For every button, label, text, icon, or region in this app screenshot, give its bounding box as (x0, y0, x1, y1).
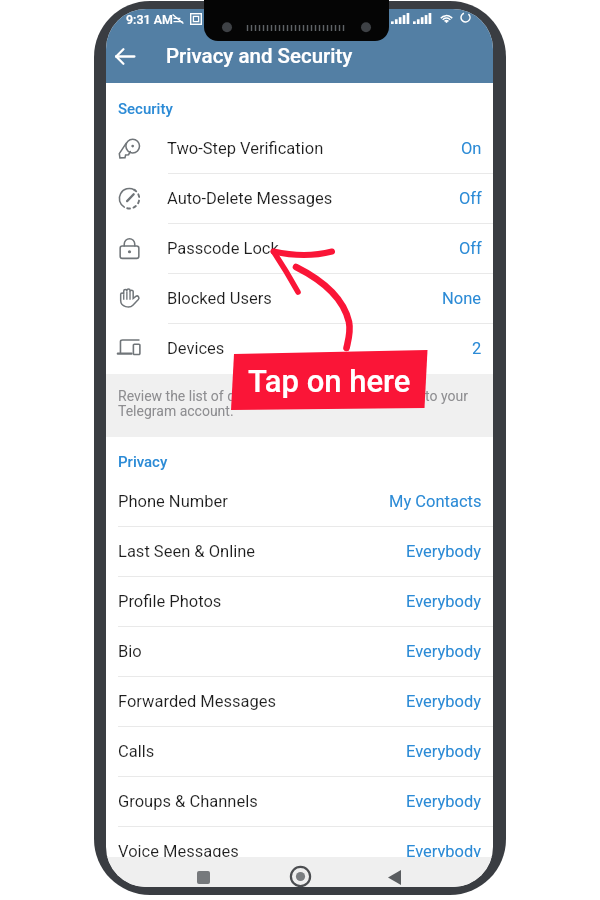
staticText: Forwarded Messages (118, 692, 277, 711)
staticText: Everybody (406, 642, 482, 661)
staticText: Last Seen & Online (118, 542, 256, 561)
button[interactable]: Voice Messages (106, 827, 493, 876)
button[interactable]: Recents (187, 862, 219, 887)
staticText: Everybody (406, 542, 482, 561)
staticText: Tap on here (248, 363, 411, 399)
staticText: Auto-Delete Messages (167, 189, 333, 208)
button[interactable]: Last Seen & Online (106, 527, 493, 576)
staticText: Blocked Users (167, 289, 272, 308)
staticText: Calls (118, 742, 155, 761)
button[interactable]: Calls (106, 727, 493, 776)
staticText: Voice Messages (118, 842, 239, 861)
button[interactable]: Phone Number (106, 477, 493, 526)
button[interactable]: Back (106, 34, 147, 78)
button[interactable]: Blocked Users (106, 274, 493, 323)
staticText: Review the list of devices where you are… (118, 388, 468, 419)
staticText: Off (459, 239, 482, 258)
button[interactable]: Passcode Lock (106, 224, 493, 273)
staticText: Passcode Lock (167, 239, 279, 258)
staticText: 2 (472, 339, 482, 358)
staticText: None (442, 289, 482, 308)
staticText: Everybody (406, 692, 482, 711)
staticText: My Contacts (389, 492, 482, 511)
button[interactable]: Home (284, 861, 316, 887)
staticText: Profile Photos (118, 592, 222, 611)
button[interactable]: Groups & Channels (106, 777, 493, 826)
staticText: Two-Step Verification (167, 139, 324, 158)
staticText: Privacy and Security (166, 44, 353, 68)
staticText: Privacy (118, 453, 168, 471)
button[interactable]: Auto-Delete Messages (106, 174, 493, 223)
staticText: Groups & Channels (118, 792, 258, 811)
staticText: Bio (118, 642, 142, 661)
staticText: On (461, 139, 482, 158)
staticText: Everybody (406, 842, 482, 861)
staticText: Security (118, 100, 173, 118)
button[interactable]: Two-Step Verification (106, 124, 493, 173)
staticText: Devices (167, 339, 225, 358)
button[interactable]: Back (378, 862, 410, 887)
button[interactable]: Bio (106, 627, 493, 676)
staticText: 9:31 AM (126, 12, 173, 27)
button[interactable]: Forwarded Messages (106, 677, 493, 726)
staticText: Phone Number (118, 492, 228, 511)
button[interactable]: Devices (106, 324, 493, 373)
button[interactable]: Profile Photos (106, 577, 493, 626)
staticText: Off (459, 189, 482, 208)
staticText: Everybody (406, 592, 482, 611)
staticText: Everybody (406, 742, 482, 761)
staticText: Everybody (406, 792, 482, 811)
